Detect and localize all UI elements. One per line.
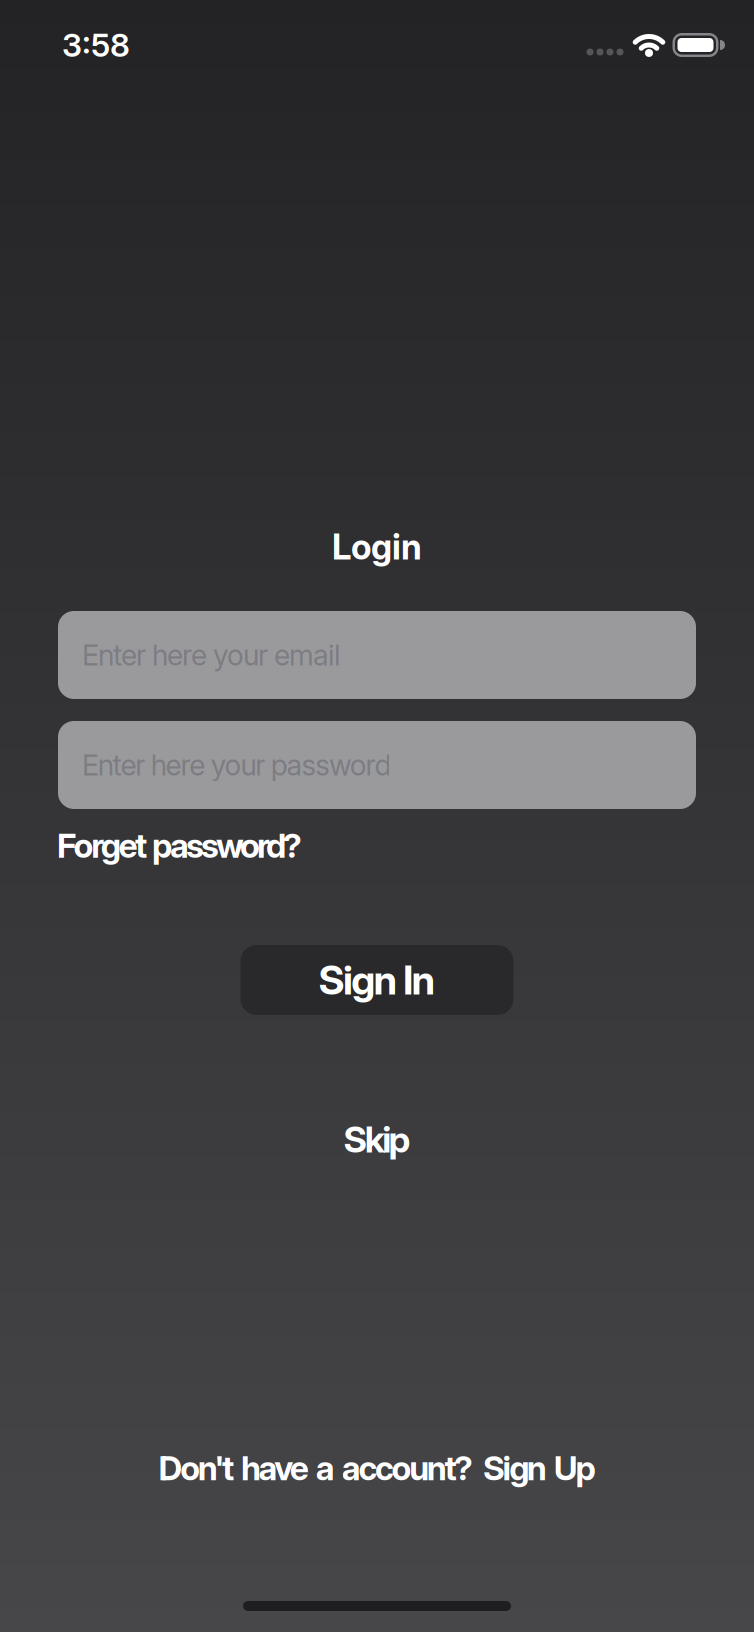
button[interactable]: Sign In xyxy=(240,945,513,1015)
staticText: Forget xyxy=(57,825,147,866)
button[interactable]: Skip xyxy=(343,1117,411,1162)
staticText: account? xyxy=(342,1448,473,1488)
button[interactable]: Forget xyxy=(57,825,302,866)
staticText: Don't xyxy=(159,1448,234,1488)
staticText: Enter here your password xyxy=(82,748,391,782)
button[interactable]: Sign xyxy=(483,1448,595,1488)
staticText: have xyxy=(241,1448,309,1488)
staticText: Enter here your email xyxy=(82,638,341,672)
staticText: 3:58 xyxy=(62,26,130,64)
button[interactable]: Enter here your password xyxy=(58,721,696,809)
staticText: Up xyxy=(554,1448,595,1488)
staticText: password? xyxy=(152,825,302,866)
staticText: Login xyxy=(332,526,422,568)
button[interactable]: Enter here your email xyxy=(58,611,696,699)
staticText: Sign In xyxy=(319,956,435,1004)
staticText: Skip xyxy=(343,1118,411,1161)
staticText: Sign xyxy=(483,1448,547,1488)
staticText: a xyxy=(316,1448,335,1488)
